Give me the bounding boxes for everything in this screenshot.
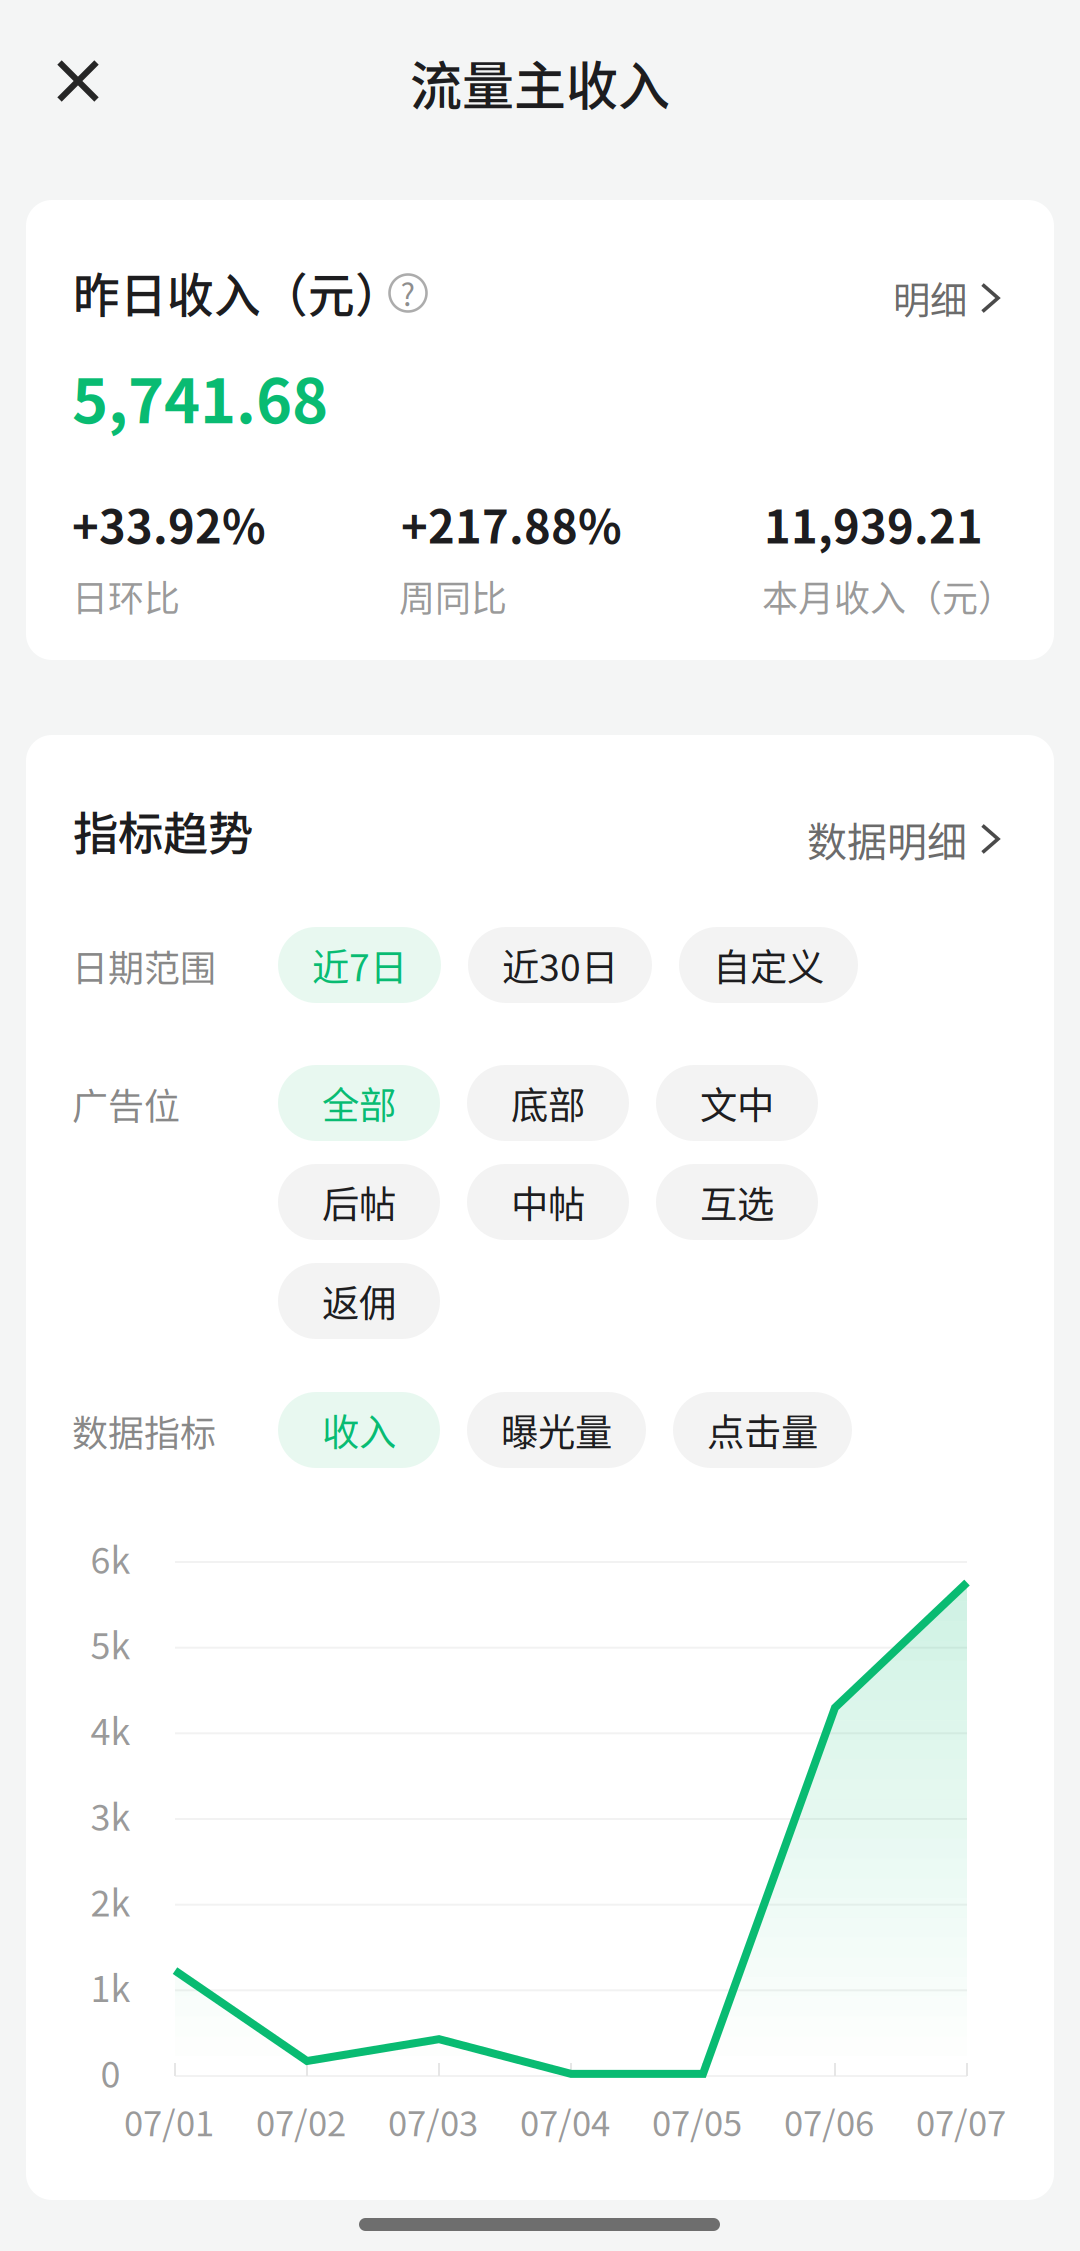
button[interactable]: 曝光量 <box>467 1392 646 1468</box>
staticText: 本月收入（元） <box>762 570 1014 622</box>
staticText: 全部 <box>322 1076 396 1130</box>
staticText: 5,741.68 <box>72 352 328 441</box>
staticText: 流量主收入 <box>410 45 670 120</box>
button[interactable]: 全部 <box>278 1065 440 1141</box>
staticText: 近30日 <box>502 938 618 992</box>
staticText: 后帖 <box>322 1175 396 1229</box>
button[interactable]: Close <box>56 59 100 103</box>
staticText: 2k <box>90 1875 130 1927</box>
staticText: 07/02 <box>256 2096 346 2146</box>
button[interactable]: 近30日 <box>468 927 652 1003</box>
staticText: 07/04 <box>520 2096 610 2146</box>
button[interactable]: 点击量 <box>673 1392 852 1468</box>
staticText: 点击量 <box>707 1403 818 1457</box>
button[interactable]: 收入 <box>278 1392 440 1468</box>
staticText: 0 <box>100 2046 120 2098</box>
staticText: 4k <box>90 1703 130 1755</box>
button[interactable]: 中帖 <box>467 1164 629 1240</box>
staticText: 3k <box>90 1789 130 1841</box>
staticText: 曝光量 <box>501 1403 612 1457</box>
staticText: 收入 <box>322 1403 396 1457</box>
button[interactable]: 文中 <box>656 1065 818 1141</box>
button[interactable]: 自定义 <box>679 927 858 1003</box>
staticText: 周同比 <box>399 570 507 622</box>
staticText: 中帖 <box>511 1175 585 1229</box>
staticText: 文中 <box>700 1076 774 1130</box>
button[interactable]: 明细 <box>893 271 1001 325</box>
staticText: 07/03 <box>388 2096 478 2146</box>
staticText: 1k <box>90 1960 130 2012</box>
staticText: 底部 <box>511 1076 585 1130</box>
button[interactable]: 返佣 <box>278 1263 440 1339</box>
staticText: 近7日 <box>312 938 407 992</box>
staticText: 07/05 <box>652 2096 742 2146</box>
staticText: 07/01 <box>124 2096 214 2146</box>
staticText: 07/07 <box>916 2096 1006 2146</box>
staticText: 07/06 <box>784 2096 874 2146</box>
staticText: 昨日收入（元） <box>73 258 402 326</box>
staticText: 6k <box>90 1532 130 1584</box>
staticText: +33.92% <box>72 491 266 557</box>
staticText: 数据明细 <box>807 810 967 868</box>
staticText: 明细 <box>893 271 967 325</box>
staticText: 互选 <box>700 1175 774 1229</box>
button[interactable]: 近7日 <box>278 927 441 1003</box>
button[interactable]: 后帖 <box>278 1164 440 1240</box>
staticText: 日环比 <box>72 570 180 622</box>
staticText: 11,939.21 <box>764 491 983 557</box>
button[interactable]: 数据明细 <box>807 810 1001 868</box>
button[interactable]: 底部 <box>467 1065 629 1141</box>
staticText: 5k <box>90 1618 130 1670</box>
staticText: 数据指标 <box>72 1405 216 1457</box>
button[interactable]: 互选 <box>656 1164 818 1240</box>
staticText: 指标趋势 <box>73 798 253 864</box>
staticText: ? <box>400 271 415 315</box>
staticText: 自定义 <box>713 938 824 992</box>
staticText: 返佣 <box>322 1274 396 1328</box>
staticText: 日期范围 <box>72 940 216 992</box>
staticText: 广告位 <box>72 1078 180 1130</box>
staticText: +217.88% <box>401 491 622 557</box>
